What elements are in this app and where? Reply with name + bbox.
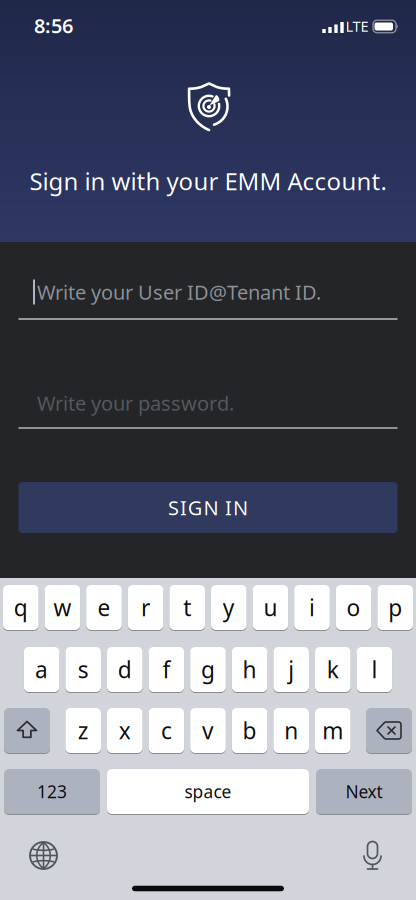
staticText: b <box>243 715 257 745</box>
staticText: a <box>35 654 48 684</box>
button[interactable]: v <box>190 707 226 753</box>
button[interactable]: l <box>357 646 392 692</box>
staticText: x <box>119 715 131 745</box>
button[interactable]: Delete <box>366 707 412 753</box>
button[interactable]: c <box>149 707 184 753</box>
staticText: u <box>263 592 277 622</box>
staticText: o <box>347 592 361 622</box>
button[interactable]: Next <box>316 768 412 814</box>
button[interactable]: r <box>128 584 163 630</box>
button[interactable]: g <box>190 646 226 692</box>
staticText: space <box>184 780 231 803</box>
staticText: i <box>309 592 315 622</box>
button[interactable]: u <box>253 584 288 630</box>
staticText: e <box>97 592 110 622</box>
staticText: p <box>388 592 402 622</box>
button[interactable]: s <box>65 646 101 692</box>
staticText: Write your password. <box>37 390 234 416</box>
staticText: 123 <box>37 780 67 803</box>
button[interactable]: z <box>65 707 101 753</box>
staticText: d <box>118 654 132 684</box>
button[interactable]: Next keyboard <box>30 842 57 869</box>
staticText: c <box>161 715 172 745</box>
staticText: z <box>78 715 89 745</box>
staticText: Write your User ID@Tenant ID. <box>37 279 321 305</box>
button[interactable]: h <box>232 646 267 692</box>
button[interactable]: a <box>24 646 59 692</box>
button[interactable]: x <box>107 707 143 753</box>
button[interactable]: b <box>232 707 267 753</box>
button[interactable]: o <box>336 584 371 630</box>
staticText: r <box>141 592 150 622</box>
button[interactable]: Shift <box>4 707 50 753</box>
button[interactable]: SIGN IN <box>18 482 397 533</box>
staticText: Sign in with your EMM Account. <box>29 165 386 197</box>
staticText: h <box>243 654 257 684</box>
button[interactable]: y <box>211 584 247 630</box>
staticText: v <box>202 715 214 745</box>
button[interactable]: i <box>294 584 330 630</box>
staticText: g <box>201 654 215 684</box>
button[interactable]: w <box>45 584 80 630</box>
button[interactable]: k <box>315 646 351 692</box>
button[interactable]: p <box>377 584 413 630</box>
staticText: SIGN IN <box>168 494 248 521</box>
staticText: s <box>78 654 89 684</box>
button[interactable]: f <box>149 646 184 692</box>
button[interactable]: space <box>107 768 309 814</box>
staticText: k <box>327 654 339 684</box>
button[interactable]: t <box>169 584 205 630</box>
staticText: f <box>162 654 170 684</box>
staticText: q <box>14 592 28 622</box>
staticText: m <box>322 715 343 745</box>
staticText: w <box>53 592 71 622</box>
button[interactable]: m <box>315 707 351 753</box>
staticText: l <box>371 654 377 684</box>
staticText: t <box>183 592 191 622</box>
button[interactable]: d <box>107 646 143 692</box>
staticText: LTE <box>345 16 368 36</box>
staticText: y <box>223 592 235 622</box>
button[interactable]: n <box>273 707 309 753</box>
staticText: Next <box>345 780 382 803</box>
button[interactable]: q <box>3 584 39 630</box>
button[interactable]: Dictation <box>363 847 381 864</box>
button[interactable]: j <box>273 646 309 692</box>
staticText: j <box>288 654 294 684</box>
staticText: n <box>284 715 298 745</box>
button[interactable]: Numbers <box>4 768 100 814</box>
staticText: 8:56 <box>34 12 73 39</box>
button[interactable]: e <box>86 584 122 630</box>
